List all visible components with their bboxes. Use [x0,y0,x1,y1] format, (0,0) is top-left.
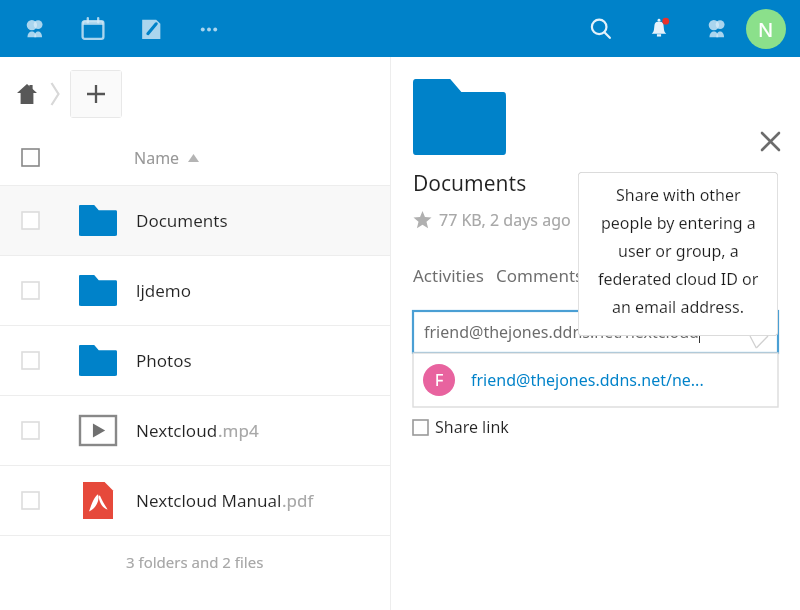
staticText: Name [134,147,180,169]
staticText: 3 folders and 2 files [126,552,264,572]
button[interactable]: Calendar [64,0,122,57]
staticText: Nextcloud [136,419,218,442]
staticText: Sharing [596,264,658,287]
staticText: Photos [136,349,192,372]
staticText: N [758,16,774,43]
staticText: friend@thejones.ddns.net/ne... [471,369,704,391]
staticText: Share link [435,416,509,438]
button[interactable]: friend@thejones.ddns.net/nextcloud [413,311,778,353]
button[interactable]: Activities [413,262,484,289]
staticText: Share with other [616,184,741,206]
staticText: people by entering a [601,212,756,234]
staticText: F [435,369,444,391]
staticText: 77 KB, 2 days ago [439,209,571,231]
staticText: ljdemo [136,279,191,302]
staticText: an email address. [612,296,744,318]
staticText: i [761,321,767,344]
staticText: Documents [136,209,228,232]
staticText: .mp4 [218,419,259,442]
button[interactable]: F [413,353,778,407]
button[interactable]: Photos [0,326,390,395]
staticText: .pdf [282,489,314,512]
button[interactable]: Contacts [6,0,64,57]
button[interactable]: ljdemo [0,256,390,325]
button[interactable]: Search [572,0,630,57]
button[interactable]: Comments [496,262,584,289]
button[interactable]: More apps [180,0,238,57]
button[interactable]: Nextcloud [0,396,390,465]
staticText: Comments [496,264,584,287]
staticText: user or group, a [618,240,739,262]
button[interactable]: Account [746,9,786,49]
staticText: Nextcloud Manual [136,489,282,512]
button[interactable]: Nextcloud Manual [0,466,390,535]
button[interactable]: Share link [413,416,509,438]
button[interactable]: Home [10,77,44,111]
staticText: friend@thejones.ddns.net/nextcloud [424,321,699,343]
button[interactable]: Notes [122,0,180,57]
button[interactable]: Sharing [596,262,658,289]
button[interactable]: Notifications [630,0,688,57]
button[interactable]: Close [752,123,788,159]
staticText: federated cloud ID or [598,268,759,290]
button[interactable]: Name [0,130,390,185]
button[interactable]: New [70,70,122,118]
button[interactable]: Favorite [413,211,432,230]
staticText: Documents [413,169,527,198]
button[interactable]: Contacts menu [688,0,746,57]
button[interactable]: Documents [0,186,390,255]
staticText: Activities [413,264,484,287]
